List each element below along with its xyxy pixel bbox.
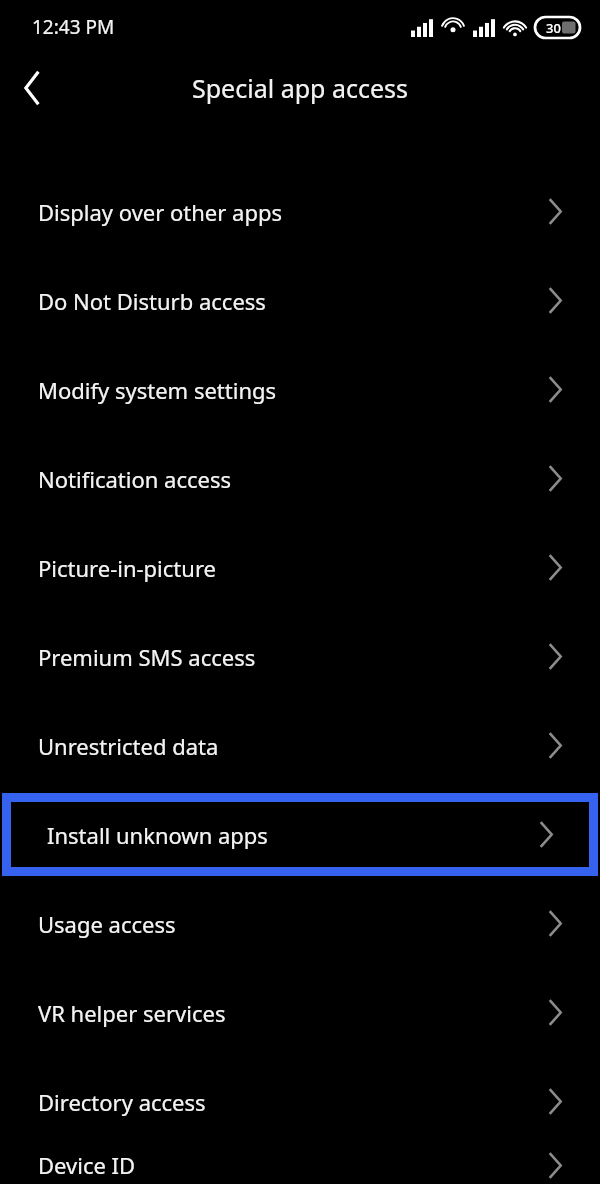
button[interactable]: Picture-in-picture <box>0 523 600 612</box>
button[interactable]: Device ID <box>0 1146 600 1184</box>
button[interactable]: Modify system settings <box>0 345 600 434</box>
staticText: 30 <box>546 19 561 37</box>
staticText: Unrestricted data <box>38 731 219 761</box>
button[interactable]: Usage access <box>0 879 600 968</box>
staticText: VR helper services <box>38 998 226 1028</box>
staticText: Picture-in-picture <box>38 553 216 583</box>
button[interactable]: Unrestricted data <box>0 701 600 790</box>
staticText: Usage access <box>38 909 176 939</box>
staticText: Device ID <box>38 1150 136 1180</box>
staticText: Modify system settings <box>38 375 277 405</box>
button[interactable]: Notification access <box>0 434 600 523</box>
staticText: Directory access <box>38 1087 206 1117</box>
staticText: Premium SMS access <box>38 642 256 672</box>
staticText: 12:43 PM <box>32 14 115 40</box>
button[interactable]: Do Not Disturb access <box>0 256 600 345</box>
button[interactable]: VR helper services <box>0 968 600 1057</box>
staticText: Notification access <box>38 464 231 494</box>
staticText: Display over other apps <box>38 197 283 227</box>
button[interactable]: Back <box>0 56 64 120</box>
staticText: Install unknown apps <box>47 820 268 850</box>
button[interactable]: Display over other apps <box>0 167 600 256</box>
staticText: Do Not Disturb access <box>38 286 266 316</box>
staticText: Special app access <box>0 71 600 105</box>
button[interactable]: Premium SMS access <box>0 612 600 701</box>
button[interactable]: Directory access <box>0 1057 600 1146</box>
button[interactable]: Install unknown apps <box>0 790 600 879</box>
